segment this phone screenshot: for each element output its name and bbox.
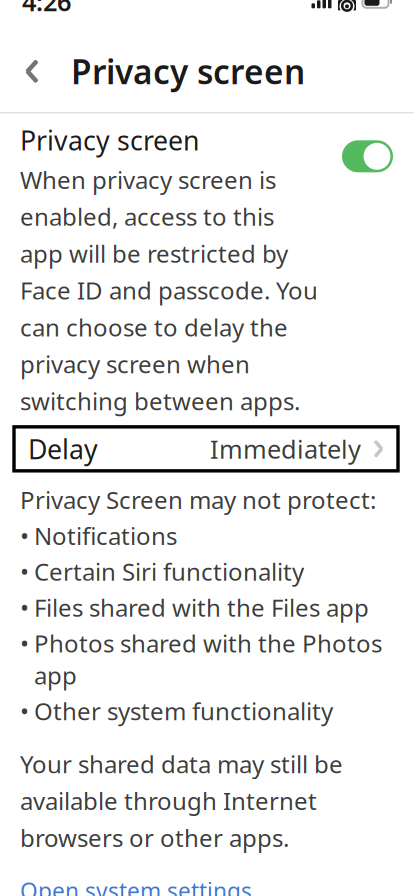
- staticText: •: [20, 520, 29, 552]
- staticText: Files shared with the Files app: [34, 591, 369, 623]
- staticText: 4:26: [22, 0, 71, 18]
- staticText: •: [20, 591, 29, 623]
- staticText: Photos shared with the Photos app: [34, 627, 382, 691]
- staticText: Certain Siri functionality: [34, 556, 304, 587]
- staticText: Your shared data may still be available …: [20, 748, 343, 854]
- staticText: Privacy screen: [71, 49, 305, 93]
- staticText: •: [20, 556, 29, 587]
- staticText: Immediately: [210, 432, 361, 466]
- button[interactable]: Privacy screen toggle: [342, 122, 393, 172]
- staticText: Privacy screen: [20, 122, 199, 158]
- staticText: Delay: [28, 431, 98, 466]
- staticText: Open system settings: [20, 876, 252, 896]
- staticText: Other system functionality: [34, 695, 333, 727]
- staticText: Notifications: [34, 520, 177, 552]
- button[interactable]: Delay: [14, 427, 398, 471]
- staticText: Privacy Screen may not protect:: [20, 484, 376, 516]
- staticText: •: [20, 695, 29, 727]
- staticText: When privacy screen is enabled, access t…: [20, 164, 318, 417]
- staticText: •: [20, 627, 29, 659]
- button[interactable]: Back: [5, 44, 59, 98]
- button[interactable]: Open system settings: [0, 854, 272, 896]
